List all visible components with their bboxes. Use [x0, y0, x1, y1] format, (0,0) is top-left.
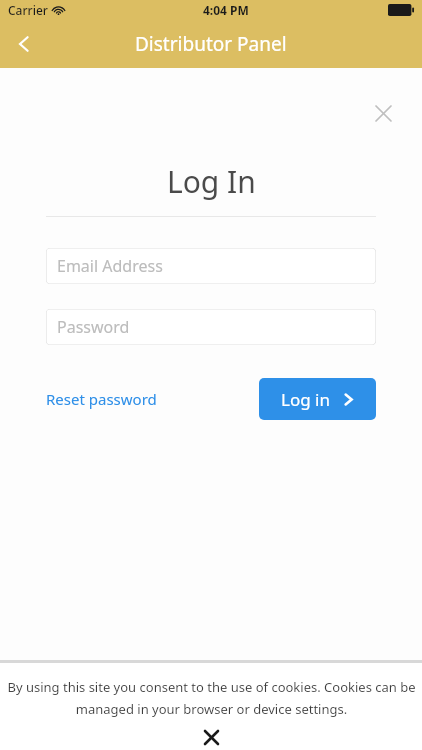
button[interactable]: Back — [0, 20, 48, 68]
staticText: Log In — [167, 161, 256, 202]
staticText: Distributor Panel — [135, 31, 287, 57]
button[interactable]: Close — [366, 96, 400, 130]
staticText: Password — [57, 316, 130, 338]
staticText: 4:04 PM — [203, 2, 249, 18]
staticText: Email Address — [57, 255, 163, 277]
button[interactable]: Reset password — [46, 389, 157, 409]
button[interactable]: Email Address — [46, 248, 376, 284]
staticText: Carrier — [8, 2, 48, 18]
staticText: Reset password — [46, 389, 157, 409]
staticText: By using this site you consent to the us… — [7, 678, 416, 718]
button[interactable]: Log in — [259, 378, 376, 420]
staticText: Log in — [281, 388, 330, 411]
button[interactable]: Password — [46, 309, 376, 345]
button[interactable]: Dismiss cookie notice — [196, 725, 226, 750]
